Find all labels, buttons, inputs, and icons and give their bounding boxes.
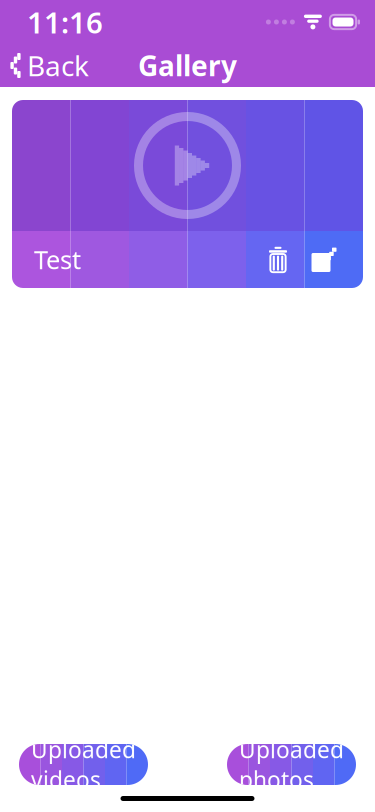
button[interactable]: Uploaded videos bbox=[19, 744, 148, 785]
staticText: Gallery bbox=[138, 47, 237, 84]
staticText: Uploaded videos bbox=[31, 734, 136, 795]
staticText: Back bbox=[27, 47, 89, 84]
button[interactable]: Uploaded photos bbox=[227, 744, 356, 785]
button[interactable]: Test bbox=[12, 100, 363, 288]
button[interactable]: Delete bbox=[255, 236, 301, 282]
staticText: 11:16 bbox=[27, 2, 103, 41]
staticText: Uploaded photos bbox=[239, 734, 344, 795]
staticText: Test bbox=[34, 243, 81, 276]
button[interactable]: Edit bbox=[301, 236, 347, 282]
button[interactable]: Back bbox=[0, 42, 101, 89]
